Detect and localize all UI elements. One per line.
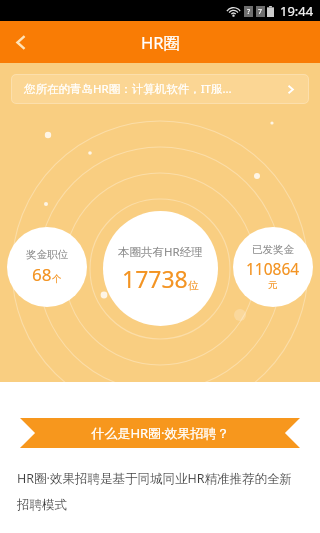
button[interactable]: 您所在的青岛HR圈：计算机软件，IT服… bbox=[11, 74, 309, 104]
staticText: 您所在的青岛HR圈：计算机软件，IT服… bbox=[24, 81, 279, 97]
staticText: ? bbox=[247, 7, 251, 17]
staticText: 7 bbox=[258, 7, 263, 17]
button[interactable]: Back bbox=[0, 21, 42, 63]
staticText: 110864 bbox=[246, 258, 300, 279]
staticText: 已发奖金 bbox=[252, 243, 294, 256]
staticText: 奖金职位 bbox=[26, 248, 68, 261]
staticText: HR圈·效果招聘是基于同城同业HR精准推荐的全新招聘模式 bbox=[17, 470, 303, 512]
staticText: 个 bbox=[52, 273, 62, 285]
staticText: 位 bbox=[188, 279, 199, 292]
button[interactable]: 本圈共有HR经理 bbox=[103, 211, 218, 326]
staticText: 什么是HR圈·效果招聘？ bbox=[91, 424, 230, 442]
staticText: 17738 bbox=[122, 263, 188, 294]
staticText: HR圈 bbox=[141, 31, 180, 54]
button[interactable]: 奖金职位 bbox=[7, 227, 87, 307]
staticText: 19:44 bbox=[280, 2, 314, 20]
staticText: 本圈共有HR经理 bbox=[118, 244, 203, 260]
staticText: 元 bbox=[268, 279, 278, 291]
button[interactable]: 已发奖金 bbox=[233, 227, 313, 307]
staticText: 68 bbox=[32, 263, 52, 286]
